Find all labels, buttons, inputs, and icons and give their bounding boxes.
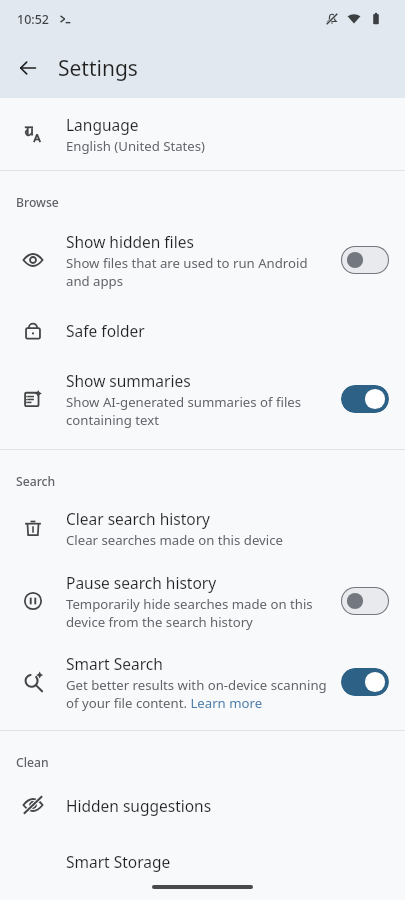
button[interactable]: Toggle off xyxy=(341,587,389,615)
staticText: Get better results with on-device scanni… xyxy=(66,676,327,712)
staticText: Search xyxy=(16,473,56,490)
other: Clear search history xyxy=(21,516,45,540)
staticText: Safe folder xyxy=(66,320,145,341)
staticText: Language xyxy=(66,114,139,135)
other: Hidden suggestions xyxy=(21,793,45,817)
staticText: Show summaries xyxy=(66,370,191,391)
other: Show hidden files xyxy=(21,248,45,272)
staticText: English (United States) xyxy=(66,137,206,155)
button[interactable]: Clear search history xyxy=(0,496,405,560)
staticText: Browse xyxy=(16,194,59,211)
button[interactable]: Smart Search xyxy=(0,642,405,722)
staticText: Show files that are used to run Android … xyxy=(66,254,308,290)
staticText: Temporarily hide searches made on this d… xyxy=(66,595,313,631)
button[interactable]: Show hidden files xyxy=(0,219,405,301)
button[interactable]: Show summaries xyxy=(0,359,405,439)
other: Smart Search xyxy=(21,670,45,694)
staticText: 10:52 xyxy=(17,11,50,28)
staticText: Clear searches made on this device xyxy=(66,531,283,549)
staticText: Hidden suggestions xyxy=(66,795,212,816)
other: Safe folder xyxy=(21,318,45,342)
button[interactable]: Pause search history xyxy=(0,560,405,642)
other: Language xyxy=(21,122,45,146)
staticText: Show hidden files xyxy=(66,231,194,252)
other: Show summaries xyxy=(21,387,45,411)
button[interactable]: Hidden suggestions xyxy=(0,777,405,833)
button[interactable]: Smart Storage xyxy=(0,833,405,889)
staticText: Clear search history xyxy=(66,508,210,529)
staticText: Smart Storage xyxy=(66,851,171,872)
button[interactable]: Toggle off xyxy=(341,246,389,274)
other: Pause search history xyxy=(21,589,45,613)
staticText: Smart Search xyxy=(66,653,163,674)
button[interactable]: Language xyxy=(0,98,405,170)
button[interactable]: Toggle on xyxy=(341,385,389,413)
staticText: Pause search history xyxy=(66,572,217,593)
staticText: Show AI-generated summaries of files con… xyxy=(66,393,302,429)
button[interactable]: Safe folder xyxy=(0,301,405,359)
staticText: Settings xyxy=(58,54,138,83)
button[interactable]: Toggle on xyxy=(341,668,389,696)
staticText: Clean xyxy=(16,754,49,771)
button[interactable]: Back xyxy=(11,51,45,85)
